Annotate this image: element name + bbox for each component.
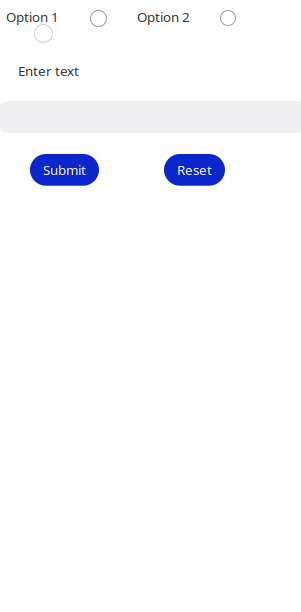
- button[interactable]: Reset: [164, 154, 225, 186]
- staticText: Enter text: [18, 62, 79, 80]
- staticText: Submit: [43, 161, 86, 179]
- staticText: Option 2: [137, 8, 190, 26]
- staticText: Reset: [177, 161, 212, 179]
- button[interactable]: Option 2: [220, 10, 236, 26]
- button[interactable]: Option 1 selected: [34, 24, 53, 43]
- button[interactable]: Submit: [30, 154, 99, 186]
- button[interactable]: Option 1: [90, 10, 107, 27]
- staticText: Option 1: [6, 8, 59, 26]
